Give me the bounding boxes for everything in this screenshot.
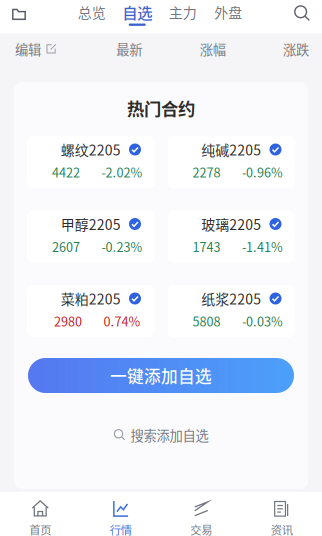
staticText: 玻璃2205 [201,214,261,234]
staticText: -1.41% [242,237,283,256]
button[interactable]: 交易 [161,492,241,536]
staticText: 纯碱2205 [201,139,261,160]
staticText: 5808 [192,312,220,330]
button[interactable]: 总览 [69,0,114,27]
staticText: 4422 [52,163,80,181]
staticText: -0.96% [242,163,283,181]
staticText: 纸浆2205 [201,288,261,309]
staticText: 行情 [110,521,132,536]
staticText: 自选 [122,1,152,23]
staticText: 外盘 [214,2,242,22]
staticText: 主力 [169,2,197,22]
button[interactable]: 螺纹2205 [27,136,154,188]
staticText: 1743 [192,237,220,256]
staticText: 总览 [78,2,106,22]
button[interactable]: 自选 [114,0,160,27]
button[interactable]: 资讯 [241,492,322,536]
staticText: 最新 [116,39,142,59]
button[interactable]: 搜索 [282,0,322,27]
staticText: 菜粕2205 [61,288,121,309]
staticText: 涨幅 [200,39,226,59]
button[interactable]: 纯碱2205 [167,136,295,188]
button[interactable]: 一键添加自选 [28,358,294,393]
staticText: 搜索添加自选 [130,425,208,445]
button[interactable]: 编辑 [0,30,71,68]
staticText: 0.74% [103,312,140,330]
button[interactable]: 玻璃2205 [167,210,295,262]
staticText: 涨跌 [283,39,309,59]
button[interactable]: 搜索添加自选 [113,422,208,448]
button[interactable]: 外盘 [205,0,251,27]
staticText: 2278 [192,163,220,181]
staticText: -0.03% [242,312,283,330]
staticText: 2980 [54,312,82,330]
button[interactable]: 涨幅 [188,33,238,64]
staticText: 甲醇2205 [61,214,121,234]
button[interactable]: 菜粕2205 [27,285,154,337]
staticText: 交易 [190,521,212,536]
button[interactable]: 行情 [80,492,161,536]
staticText: -0.23% [101,237,142,256]
button[interactable]: 最新 [104,33,154,64]
staticText: 编辑 [15,39,41,59]
button[interactable]: 首页 [0,492,80,536]
button[interactable]: 纸浆2205 [167,285,295,337]
staticText: 首页 [29,521,51,536]
button[interactable]: 文件夹 [0,0,38,27]
staticText: 资讯 [271,521,293,536]
staticText: 2607 [52,237,80,256]
button[interactable]: 甲醇2205 [27,210,154,262]
staticText: 一键添加自选 [110,363,212,387]
button[interactable]: 涨跌 [271,33,321,64]
staticText: -2.02% [101,163,142,181]
staticText: 热门合约 [127,95,195,121]
staticText: 螺纹2205 [61,139,121,160]
button[interactable]: 主力 [160,0,205,27]
